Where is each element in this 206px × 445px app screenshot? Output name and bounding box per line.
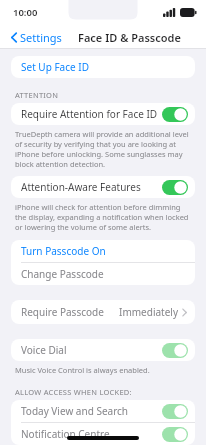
button[interactable]: Today View and Search — [11, 400, 195, 422]
staticText: iPhone will check for attention before d… — [15, 202, 189, 232]
staticText: Voice Dial — [21, 343, 67, 357]
button[interactable]: Today View and Search toggle, on — [162, 404, 188, 419]
button[interactable]: Set Up Face ID — [11, 56, 195, 78]
button[interactable]: Voice Dial — [11, 339, 195, 361]
button[interactable]: Require Passcode — [11, 300, 195, 324]
staticText: Require Passcode — [21, 305, 104, 319]
button[interactable]: Turn Passcode On — [11, 240, 195, 262]
button[interactable]: Settings — [8, 28, 65, 47]
staticText: Face ID & Passcode — [78, 30, 181, 45]
staticText: Change Passcode — [21, 267, 104, 281]
button[interactable]: Attention-Aware Features toggle, on — [162, 180, 188, 195]
staticText: 10:00 — [13, 6, 38, 19]
staticText: Immediately — [119, 305, 178, 319]
staticText: Turn Passcode On — [21, 244, 106, 258]
staticText: ALLOW ACCESS WHEN LOCKED: — [15, 387, 132, 397]
button[interactable]: Require Attention for Face ID — [11, 103, 195, 125]
staticText: ATTENTION — [15, 90, 59, 100]
staticText: Attention-Aware Features — [21, 180, 141, 194]
button[interactable]: Notification Centre — [11, 423, 195, 445]
button[interactable]: Change Passcode — [11, 263, 195, 285]
staticText: TrueDepth camera will provide an additio… — [15, 129, 189, 169]
staticText: Set Up Face ID — [21, 60, 89, 74]
button[interactable]: Voice Dial toggle, on — [162, 343, 188, 358]
staticText: Require Attention for Face ID — [21, 107, 158, 121]
staticText: Notification Centre — [21, 427, 110, 441]
staticText: Music Voice Control is always enabled. — [15, 365, 150, 375]
button[interactable]: Require Attention for Face ID toggle, on — [162, 107, 188, 122]
button[interactable]: Attention-Aware Features — [11, 176, 195, 198]
staticText: Today View and Search — [21, 404, 129, 418]
button[interactable]: Notification Centre toggle, on — [162, 427, 188, 442]
staticText: Settings — [20, 30, 62, 45]
